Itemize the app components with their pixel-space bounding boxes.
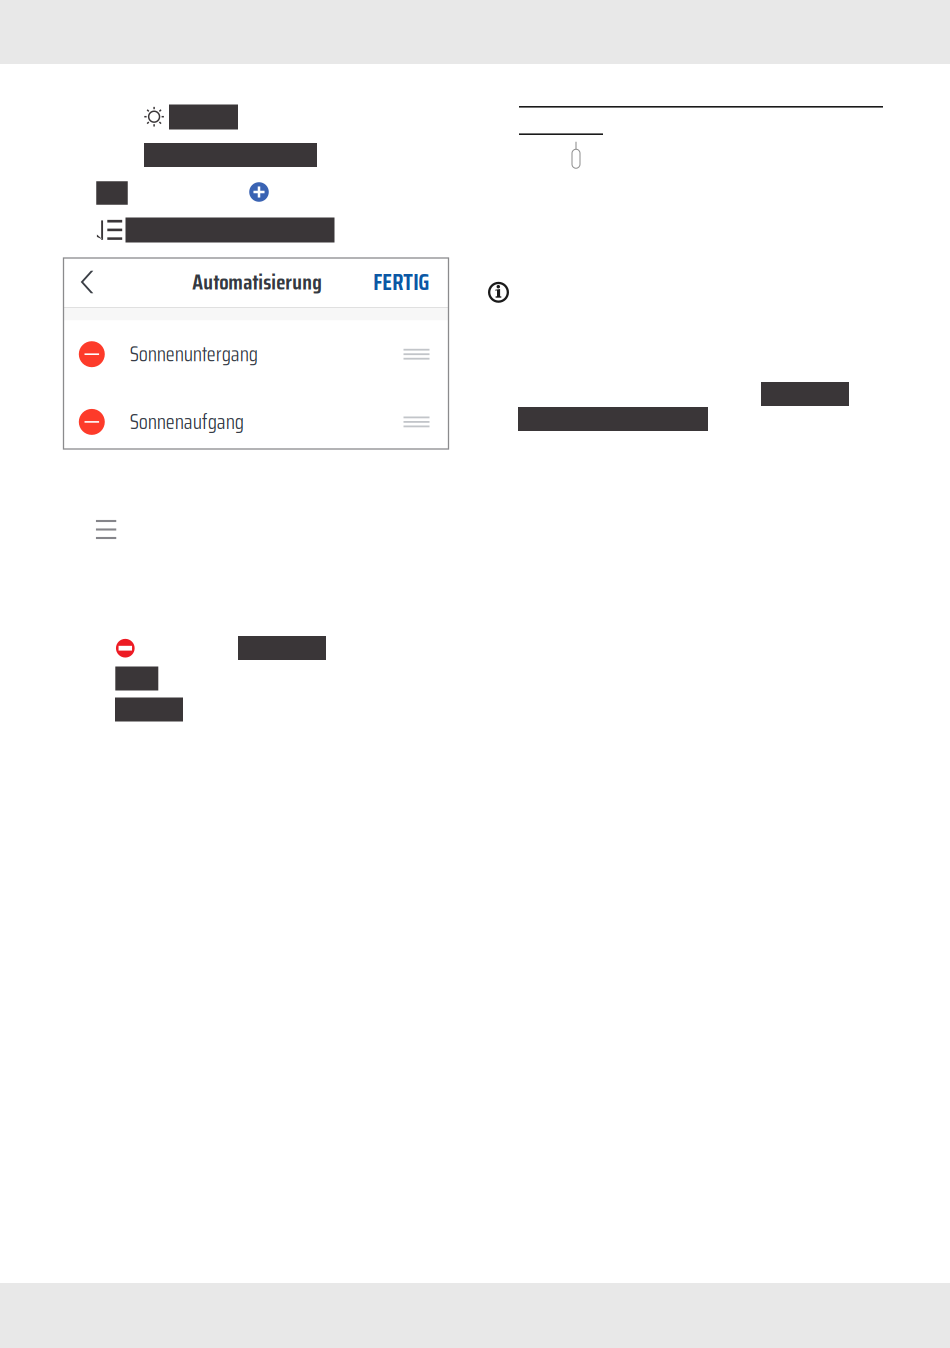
button[interactable]: Back (67, 259, 107, 305)
staticText: Sonnenaufgang (130, 406, 244, 438)
staticText: Automatisierung (192, 265, 322, 299)
button[interactable]: FERTIG (360, 252, 442, 312)
button[interactable]: Sonnenaufgang (63, 388, 448, 456)
staticText: Sonnenuntergang (130, 338, 258, 370)
staticText: FERTIG (373, 264, 429, 300)
button[interactable]: Sonnenuntergang (63, 320, 448, 388)
button[interactable]: Remove (116, 639, 135, 658)
button[interactable]: Add (249, 182, 269, 202)
